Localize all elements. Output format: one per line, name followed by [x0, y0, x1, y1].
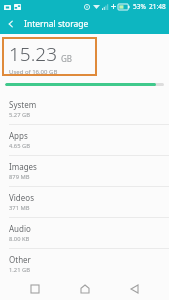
staticText: 879 MB — [9, 173, 30, 181]
staticText: 21:48 — [149, 2, 166, 11]
button[interactable]: Other — [0, 249, 169, 278]
button[interactable]: Home — [70, 278, 100, 300]
button[interactable]: Images — [0, 156, 169, 187]
staticText: 5.27 GB — [9, 111, 30, 119]
button[interactable]: Videos — [0, 187, 169, 218]
staticText: 8.00 KB — [9, 235, 30, 243]
button[interactable]: Navigate up — [0, 13, 21, 34]
button[interactable]: Recent apps — [20, 278, 50, 300]
staticText: Used of 16.00 GB — [9, 68, 58, 76]
staticText: Apps — [9, 130, 28, 141]
staticText: 4.65 GB — [9, 142, 30, 150]
staticText: 15.23 — [9, 41, 58, 67]
staticText: Internal storage — [24, 18, 89, 30]
staticText: 53% — [133, 2, 146, 11]
staticText: Images — [9, 161, 37, 172]
button[interactable]: System — [0, 94, 169, 125]
staticText: 371 MB — [9, 204, 30, 212]
staticText: System — [9, 99, 37, 110]
button[interactable]: Back — [119, 278, 149, 300]
button[interactable]: Apps — [0, 125, 169, 156]
staticText: 1.21 GB — [9, 266, 30, 273]
staticText: GB — [61, 53, 73, 64]
staticText: Other — [9, 254, 31, 265]
button[interactable]: Audio — [0, 218, 169, 249]
staticText: Audio — [9, 223, 31, 234]
staticText: Videos — [9, 192, 34, 203]
